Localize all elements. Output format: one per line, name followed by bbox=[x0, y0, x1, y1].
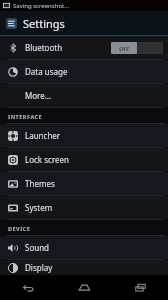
button[interactable]: More… bbox=[0, 84, 168, 107]
button[interactable]: Data usage bbox=[0, 60, 168, 83]
button[interactable]: Bluetooth bbox=[0, 36, 168, 59]
staticText: Lock screen bbox=[25, 154, 70, 165]
button[interactable]: Lock screen bbox=[0, 148, 168, 171]
staticText: System bbox=[25, 202, 53, 213]
staticText: Settings bbox=[23, 16, 65, 31]
staticText: Launcher bbox=[25, 130, 61, 141]
button[interactable]: Settings bbox=[5, 11, 168, 35]
staticText: Data usage bbox=[25, 66, 68, 77]
staticText: Themes bbox=[25, 178, 55, 189]
staticText: OFF bbox=[119, 45, 130, 52]
button[interactable]: Themes bbox=[0, 172, 168, 195]
staticText: More… bbox=[25, 90, 52, 101]
button[interactable]: System bbox=[0, 196, 168, 219]
staticText: Saving screenshot… bbox=[13, 2, 69, 10]
staticText: DEVICE bbox=[8, 225, 31, 232]
button[interactable]: Recent apps bbox=[112, 275, 168, 300]
staticText: Bluetooth bbox=[25, 42, 63, 53]
button[interactable]: Bluetooth off bbox=[111, 42, 163, 54]
staticText: Sound bbox=[25, 242, 50, 253]
button[interactable]: Home bbox=[56, 275, 112, 300]
button[interactable]: Display bbox=[0, 260, 168, 275]
button[interactable]: Sound bbox=[0, 236, 168, 259]
button[interactable]: Back bbox=[0, 275, 56, 300]
staticText: Display bbox=[25, 262, 53, 273]
button[interactable]: Launcher bbox=[0, 124, 168, 147]
staticText: INTERFACE bbox=[8, 113, 43, 120]
